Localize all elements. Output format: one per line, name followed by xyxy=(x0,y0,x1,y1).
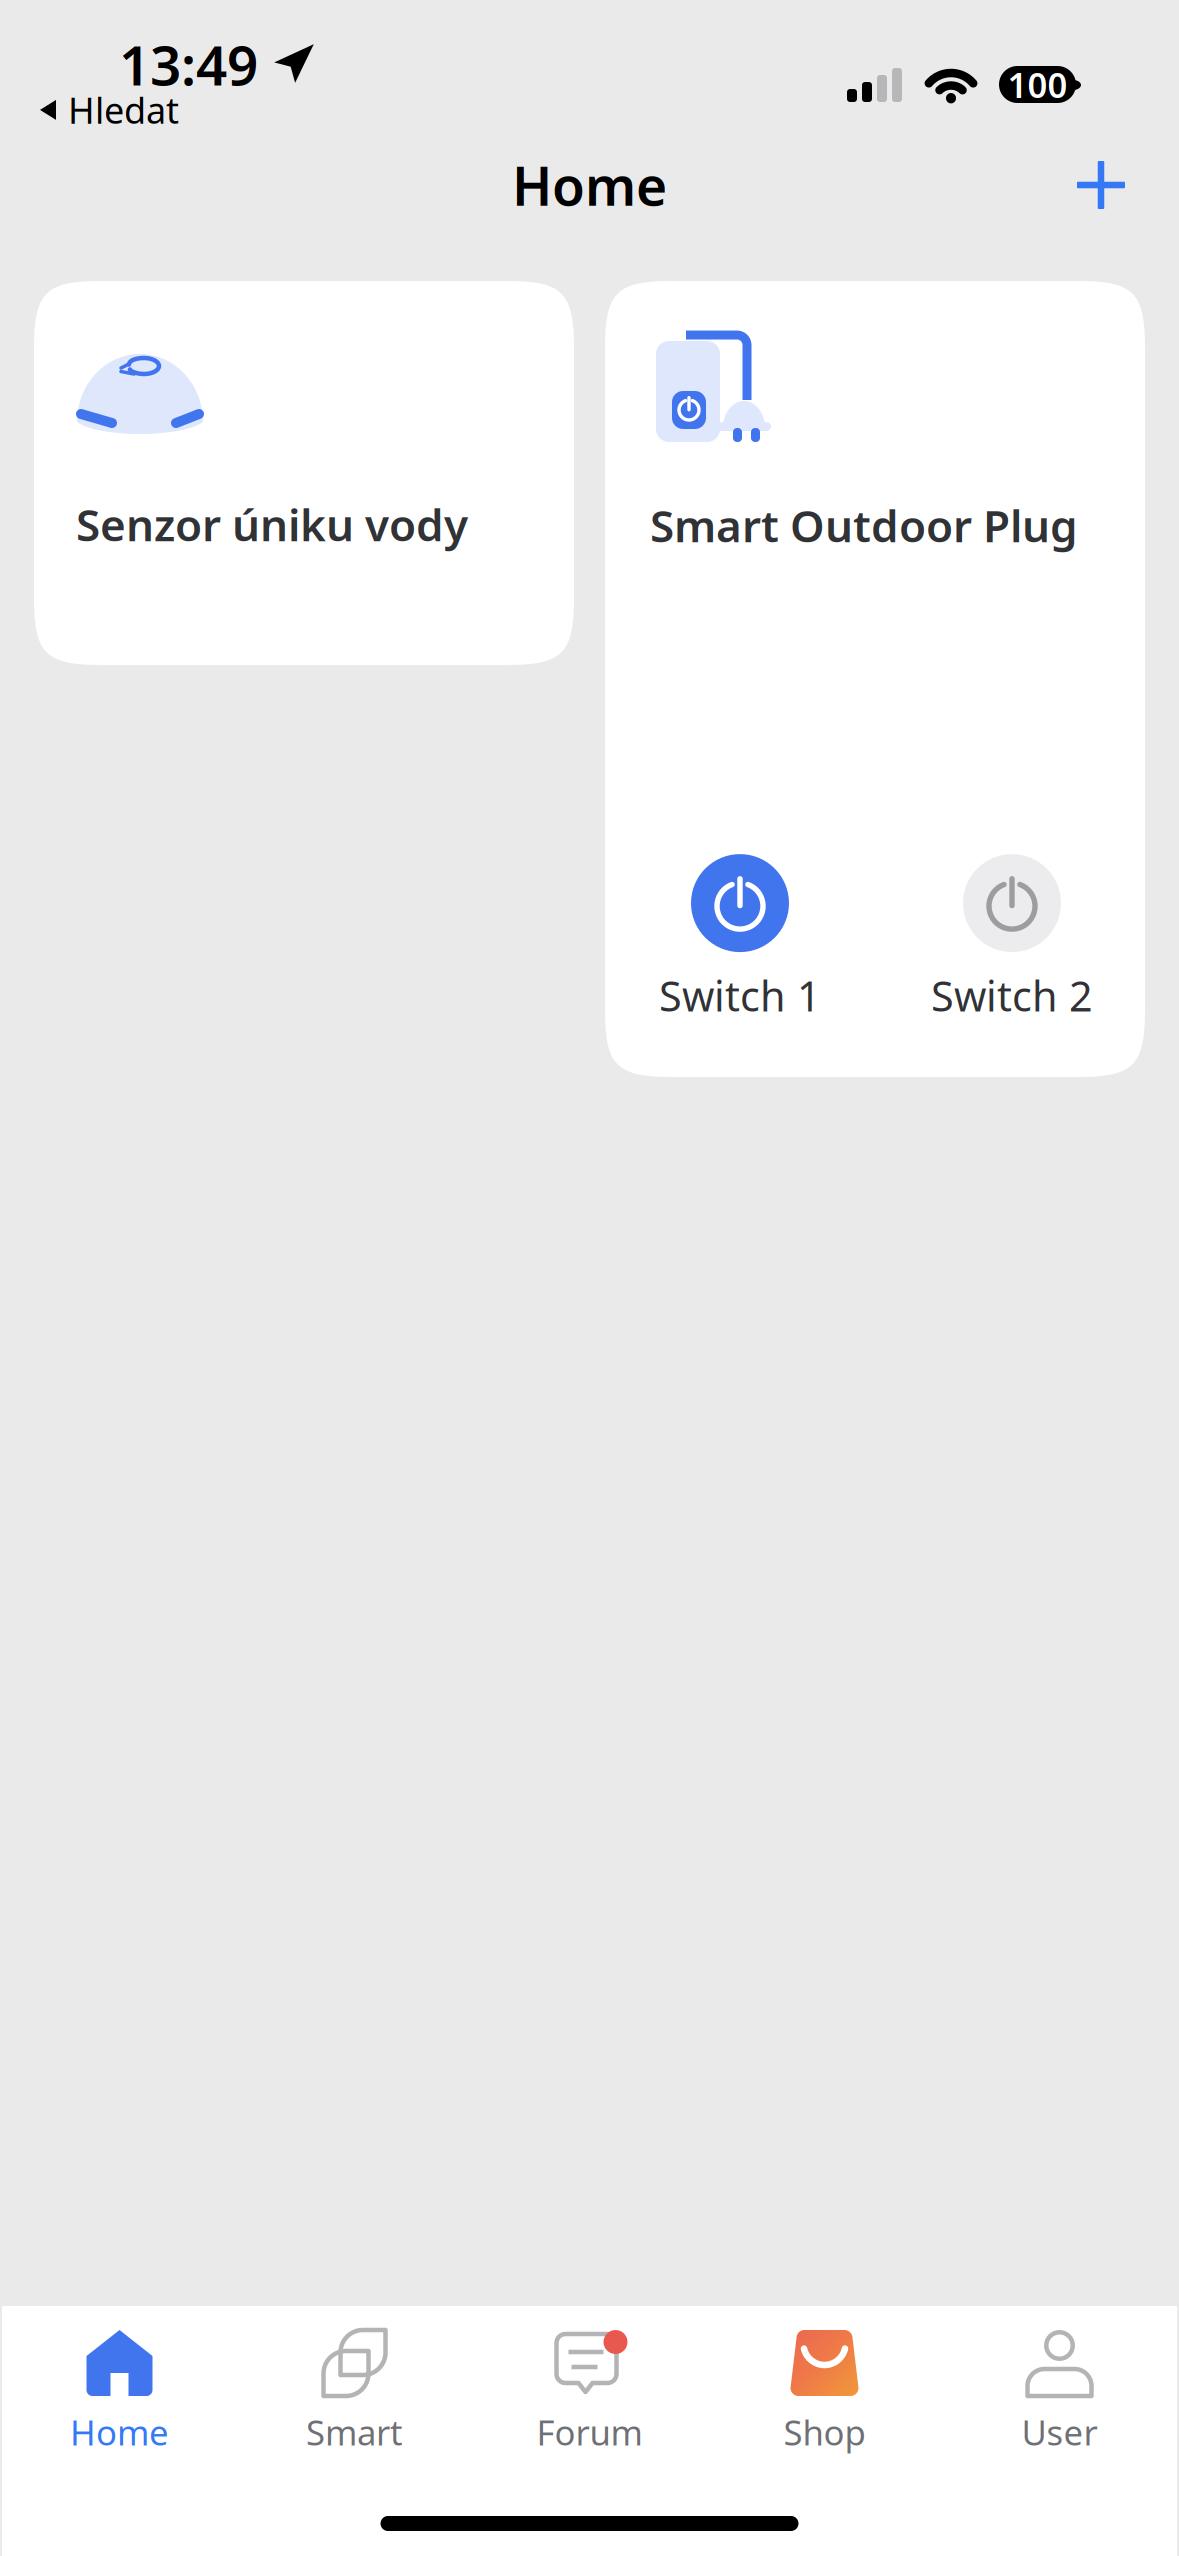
staticText: Smart Outdoor Plug xyxy=(650,496,1078,554)
staticText: Switch 1 xyxy=(659,968,821,1023)
staticText: Hledat xyxy=(68,86,179,134)
button[interactable]: Forum xyxy=(472,2328,707,2468)
staticText: Home xyxy=(512,150,667,220)
button[interactable]: User xyxy=(942,2328,1177,2468)
button[interactable]: Home xyxy=(2,2328,237,2468)
button[interactable]: Switch 1 xyxy=(659,854,821,1023)
staticText: Senzor úniku vody xyxy=(76,495,468,553)
staticText: Shop xyxy=(783,2409,865,2455)
staticText: 13:49 xyxy=(119,28,258,101)
button[interactable]: Smart Outdoor Plug xyxy=(605,281,1145,578)
button[interactable]: Smart xyxy=(237,2328,472,2468)
button[interactable]: Add device xyxy=(1056,140,1146,230)
staticText: Home xyxy=(70,2409,169,2455)
staticText: Switch 2 xyxy=(931,968,1093,1023)
button[interactable]: Senzor úniku vody xyxy=(34,281,574,665)
button[interactable]: Shop xyxy=(707,2328,942,2468)
button[interactable]: Hledat xyxy=(38,86,179,134)
staticText: Forum xyxy=(536,2409,642,2455)
staticText: 100 xyxy=(1007,61,1067,107)
button[interactable]: Switch 2 xyxy=(931,854,1093,1023)
staticText: User xyxy=(1021,2409,1097,2455)
staticText: Smart xyxy=(306,2409,403,2455)
